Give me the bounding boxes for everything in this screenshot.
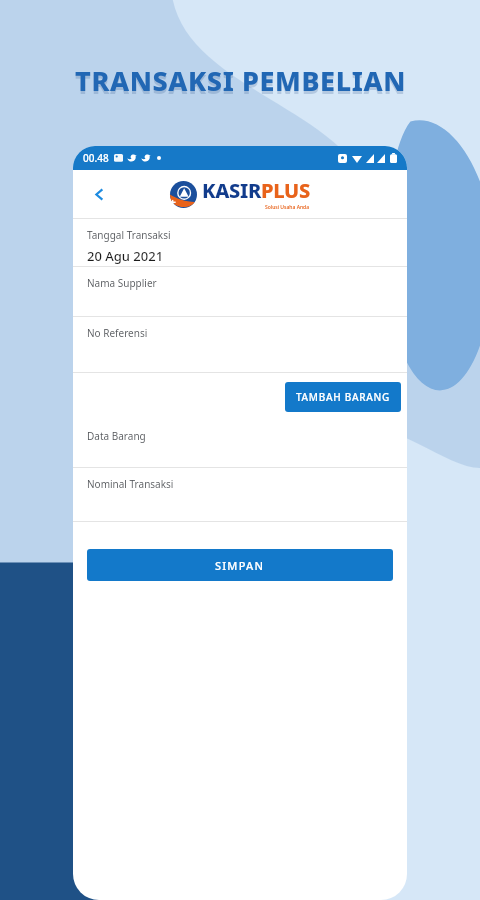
button[interactable]: SIMPAN bbox=[87, 549, 393, 581]
button[interactable]: Nominal Transaksi bbox=[73, 468, 407, 522]
staticText: TRANSAKSI PEMBELIAN bbox=[75, 65, 406, 102]
staticText: TAMBAH BARANG bbox=[296, 390, 390, 404]
staticText: 20 Agu 2021 bbox=[87, 247, 164, 265]
staticText: TRANSAKSI PEMBELIAN bbox=[75, 62, 406, 99]
staticText: Nama Supplier bbox=[87, 276, 157, 290]
button[interactable]: Back bbox=[79, 174, 119, 214]
staticText: PLUS bbox=[261, 177, 310, 204]
button[interactable]: No Referensi bbox=[73, 317, 407, 373]
staticText: No Referensi bbox=[87, 326, 148, 340]
staticText: Tanggal Transaksi bbox=[87, 228, 171, 242]
staticText: 00.48 bbox=[83, 151, 109, 165]
staticText: KASIR bbox=[202, 177, 261, 204]
staticText: Solusi Usaha Anda bbox=[265, 204, 310, 211]
staticText: Data Barang bbox=[87, 429, 146, 443]
staticText: SIMPAN bbox=[215, 558, 265, 573]
button[interactable]: Data Barang bbox=[73, 420, 407, 468]
button[interactable]: Nama Supplier bbox=[73, 267, 407, 317]
staticText: Nominal Transaksi bbox=[87, 477, 174, 491]
button[interactable]: Tanggal Transaksi bbox=[73, 219, 407, 267]
button[interactable]: TAMBAH BARANG bbox=[285, 382, 401, 412]
